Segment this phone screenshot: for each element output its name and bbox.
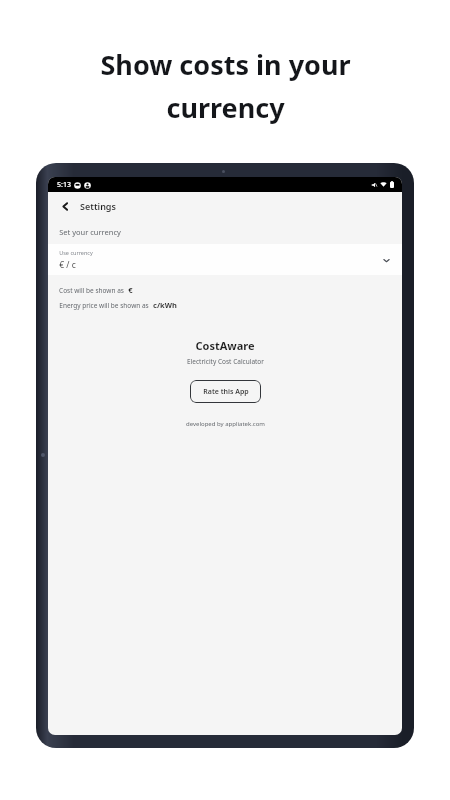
staticText: € / c [59,259,76,271]
staticText: Energy price will be shown as [59,301,149,310]
staticText: c/kWh [153,300,177,310]
staticText: currency [166,89,285,126]
button[interactable]: Back [56,197,74,215]
staticText: CostAware [195,338,255,353]
staticText: Electricity Cost Calculator [187,357,264,366]
staticText: Rate this App [203,387,249,397]
staticText: Show costs in your [100,46,351,83]
button[interactable]: Rate this App [190,380,261,403]
other: Open currency list [380,254,392,266]
staticText: Cost will be shown as [59,286,124,295]
button[interactable]: Use currency [48,244,402,275]
staticText: Settings [80,200,116,212]
staticText: developed by appliatek.com [186,420,265,428]
staticText: 5:13 [57,180,71,190]
staticText: Use currency [59,249,93,256]
staticText: Set your currency [59,227,121,237]
staticText: € [128,285,133,295]
